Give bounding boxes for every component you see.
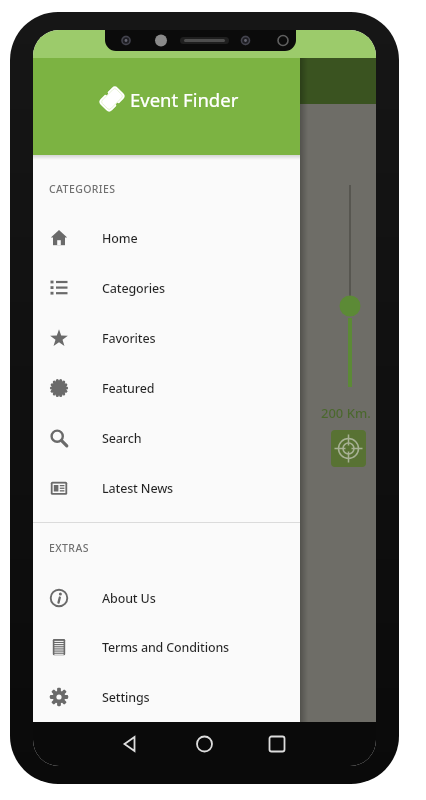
- staticText: About Us: [102, 590, 156, 607]
- button[interactable]: Favorites: [33, 314, 300, 362]
- button[interactable]: [148, 722, 262, 766]
- button[interactable]: Terms and Conditions: [33, 623, 300, 671]
- button[interactable]: [331, 430, 366, 467]
- button[interactable]: [262, 722, 376, 766]
- staticText: 200 Km.: [321, 404, 371, 421]
- staticText: CATEGORIES: [49, 182, 116, 196]
- staticText: Event Finder: [130, 87, 239, 112]
- staticText: Settings: [102, 689, 150, 706]
- staticText: Search: [102, 430, 142, 447]
- button[interactable]: Latest News: [33, 464, 300, 512]
- staticText: Latest News: [102, 480, 174, 497]
- button[interactable]: About Us: [33, 574, 300, 622]
- button[interactable]: Settings: [33, 673, 300, 721]
- button[interactable]: Categories: [33, 264, 300, 312]
- button[interactable]: [33, 722, 148, 766]
- staticText: Home: [102, 230, 138, 247]
- staticText: Favorites: [102, 330, 156, 347]
- staticText: EXTRAS: [49, 541, 89, 555]
- staticText: Categories: [102, 280, 165, 297]
- button[interactable]: Featured: [33, 364, 300, 412]
- staticText: Terms and Conditions: [102, 639, 230, 656]
- button[interactable]: Search: [33, 414, 300, 462]
- button[interactable]: Home: [33, 214, 300, 262]
- staticText: Featured: [102, 380, 155, 397]
